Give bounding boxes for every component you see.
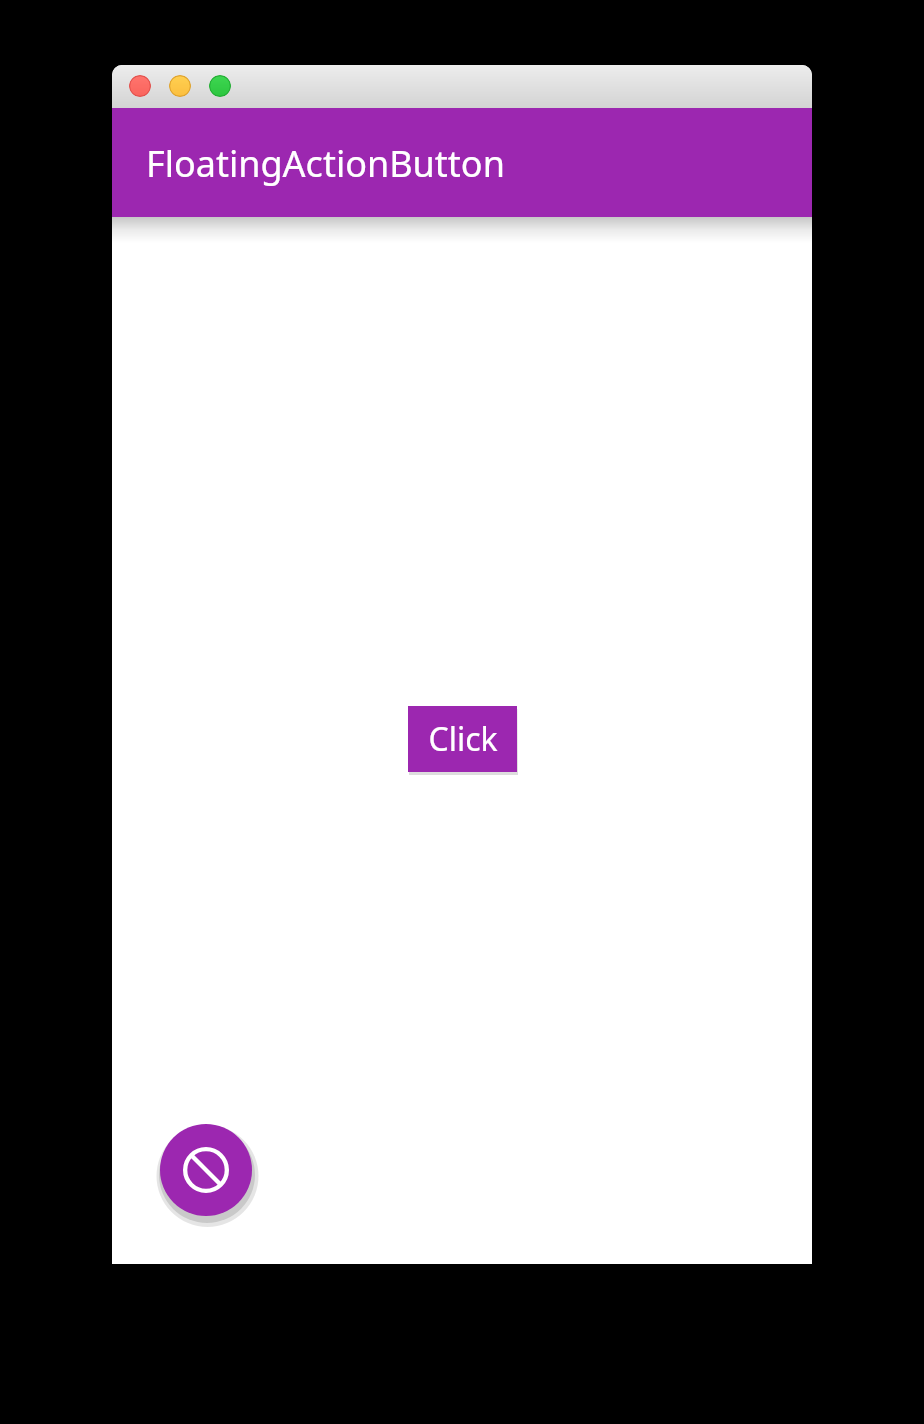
button[interactable]: Block — [160, 1124, 252, 1216]
button[interactable]: Minimize window — [169, 75, 191, 97]
button[interactable]: Close window — [129, 75, 151, 97]
button[interactable]: Maximize window — [209, 75, 231, 97]
staticText: FloatingActionButton — [146, 139, 505, 188]
button[interactable]: Click — [408, 706, 517, 772]
staticText: Click — [428, 717, 498, 761]
